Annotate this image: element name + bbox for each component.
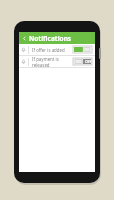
staticText: If payment is released	[32, 56, 73, 67]
button[interactable]: If payment is released	[19, 56, 95, 67]
staticText: Off	[85, 59, 91, 64]
other: Back	[21, 35, 28, 42]
button[interactable]: Back	[19, 32, 95, 44]
staticText: Notifications	[29, 34, 72, 43]
button[interactable]: Off	[73, 58, 92, 65]
button[interactable]: If offer is added	[19, 44, 95, 55]
button[interactable]: On	[73, 46, 92, 53]
staticText: If offer is added	[32, 47, 73, 53]
